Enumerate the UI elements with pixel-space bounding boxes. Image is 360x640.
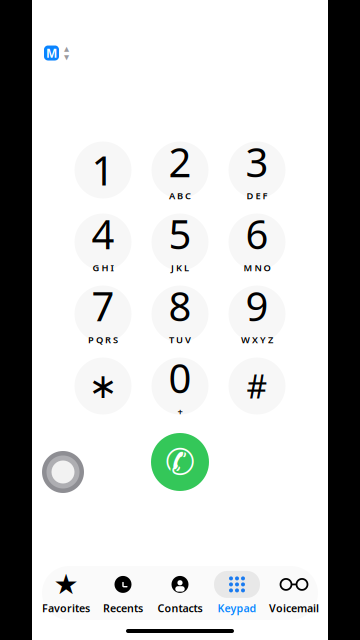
staticText: + — [177, 405, 182, 418]
staticText: 0 — [168, 351, 191, 404]
staticText: A B C — [169, 189, 191, 202]
staticText: T U V — [169, 333, 191, 346]
button[interactable]: 0 — [141, 350, 218, 422]
staticText: 6 — [245, 207, 268, 260]
staticText: M — [46, 45, 57, 61]
staticText: 2 — [168, 135, 191, 188]
staticText: ✆ — [165, 442, 195, 482]
staticText: Favorites — [42, 601, 90, 615]
staticText: 3 — [245, 135, 268, 188]
staticText: # — [246, 365, 267, 407]
staticText: 1 — [91, 143, 114, 196]
staticText: 8 — [168, 279, 191, 332]
button[interactable]: Recents — [94, 571, 151, 615]
staticText: ▼ — [64, 53, 69, 61]
staticText: Voicemail — [269, 601, 319, 615]
staticText: M N O — [243, 261, 270, 274]
staticText: W X Y Z — [241, 333, 273, 346]
button[interactable]: 9 — [218, 278, 295, 350]
button[interactable]: 1 — [64, 134, 141, 206]
staticText: 4 — [91, 207, 114, 260]
staticText: ▲ — [64, 45, 69, 52]
button[interactable]: 4 — [64, 206, 141, 278]
staticText: ★ — [53, 568, 78, 600]
button[interactable]: 8 — [141, 278, 218, 350]
staticText: ∗ — [88, 366, 117, 406]
button[interactable]: 2 — [141, 134, 218, 206]
button[interactable]: 7 — [64, 278, 141, 350]
staticText: 9 — [245, 279, 268, 332]
staticText: 7 — [91, 279, 114, 332]
staticText: Recents — [103, 601, 143, 615]
staticText: G H I — [92, 261, 113, 274]
button[interactable]: 3 — [218, 134, 295, 206]
button[interactable]: ∗ — [64, 350, 141, 422]
staticText: D E F — [246, 189, 267, 202]
button[interactable]: 5 — [141, 206, 218, 278]
button[interactable]: Voicemail — [265, 571, 322, 615]
button[interactable]: Call — [141, 426, 218, 498]
button[interactable]: ★ — [37, 571, 94, 615]
staticText: Keypad — [217, 601, 256, 615]
button[interactable]: Contacts — [151, 571, 208, 615]
button[interactable]: Mail app switcher — [44, 45, 71, 61]
staticText: P Q R S — [88, 333, 118, 346]
button[interactable]: Keypad — [208, 571, 265, 615]
button[interactable]: # — [218, 350, 295, 422]
staticText: J K L — [171, 261, 189, 274]
staticText: 5 — [168, 207, 191, 260]
staticText: Contacts — [157, 601, 202, 615]
button[interactable]: 6 — [218, 206, 295, 278]
